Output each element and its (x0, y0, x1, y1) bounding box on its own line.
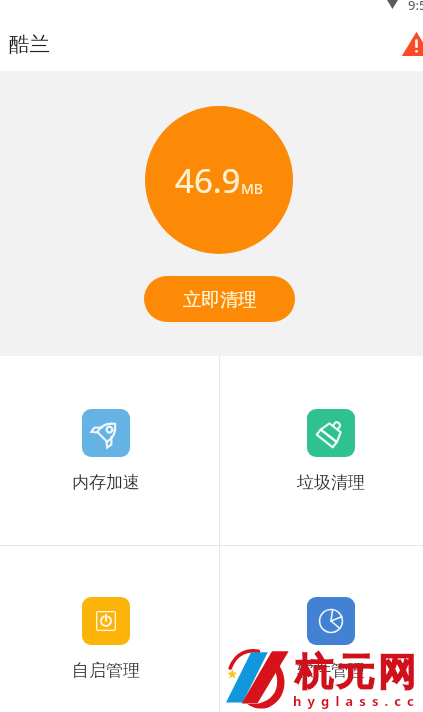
staticText: 46.9 (175, 158, 241, 203)
button[interactable]: 软件管理 (220, 546, 423, 712)
button[interactable]: Warning (399, 26, 423, 62)
staticText: 杭元网 (295, 648, 420, 696)
staticText: 垃圾清理 (297, 472, 365, 493)
button[interactable]: 自启管理 (0, 546, 219, 712)
staticText: 自启管理 (72, 660, 140, 681)
staticText: MB (241, 179, 263, 198)
button[interactable]: 垃圾清理 (220, 356, 423, 545)
button[interactable]: 内存加速 (0, 356, 219, 545)
staticText: hyglass.cc (293, 692, 420, 710)
staticText: 9:52 (408, 0, 423, 14)
staticText: 立即清理 (183, 288, 257, 311)
button[interactable]: 46.9 (145, 106, 293, 254)
staticText: 内存加速 (72, 472, 140, 493)
staticText: 酷兰 (9, 31, 50, 57)
staticText: 软件管理 (297, 660, 365, 681)
button[interactable]: 立即清理 (144, 276, 295, 322)
